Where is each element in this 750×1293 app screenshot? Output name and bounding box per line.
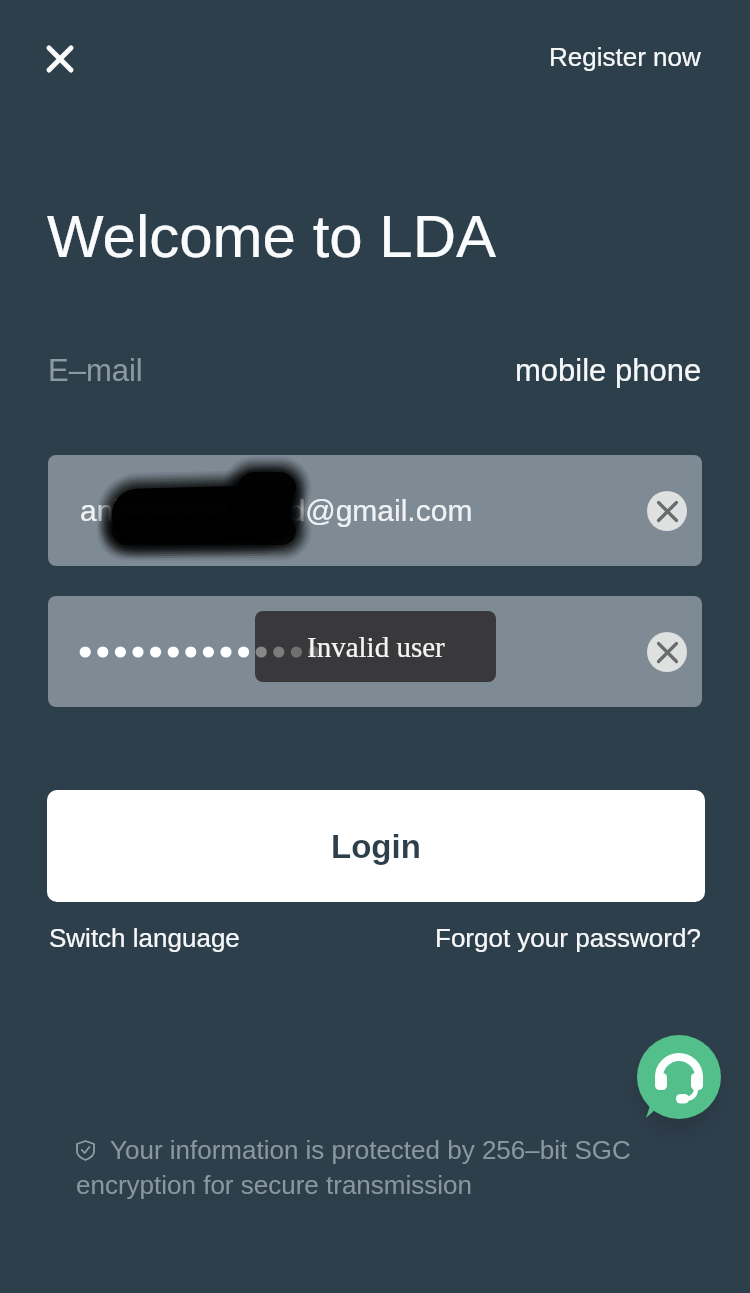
button[interactable]: [36, 35, 84, 83]
staticText: Welcome to LDA: [47, 203, 497, 270]
staticText: Switch language: [49, 923, 240, 952]
staticText: E–mail: [48, 353, 143, 388]
button[interactable]: [647, 632, 687, 672]
button[interactable]: Login: [47, 790, 705, 902]
staticText: Register now: [549, 42, 701, 71]
button[interactable]: mobile phone: [515, 353, 702, 388]
staticText: Login: [331, 828, 421, 865]
staticText: Your information is protected by 256–bit…: [110, 1135, 631, 1164]
button[interactable]: E–mail: [48, 353, 143, 388]
staticText: anhtuan.ngufood@gmail.com: [80, 494, 473, 528]
button[interactable]: Forgot your password?: [435, 923, 701, 952]
button[interactable]: [48, 596, 702, 707]
staticText: encryption for secure transmission: [76, 1170, 472, 1199]
button[interactable]: [647, 491, 687, 531]
staticText: Invalid user: [307, 631, 445, 663]
button[interactable]: anhtuan.ngufood@gmail.com: [48, 455, 702, 566]
staticText: Forgot your password?: [435, 923, 701, 952]
button[interactable]: Switch language: [49, 923, 240, 952]
button[interactable]: [637, 1034, 723, 1120]
button[interactable]: Register now: [549, 42, 701, 71]
staticText: mobile phone: [515, 353, 702, 388]
